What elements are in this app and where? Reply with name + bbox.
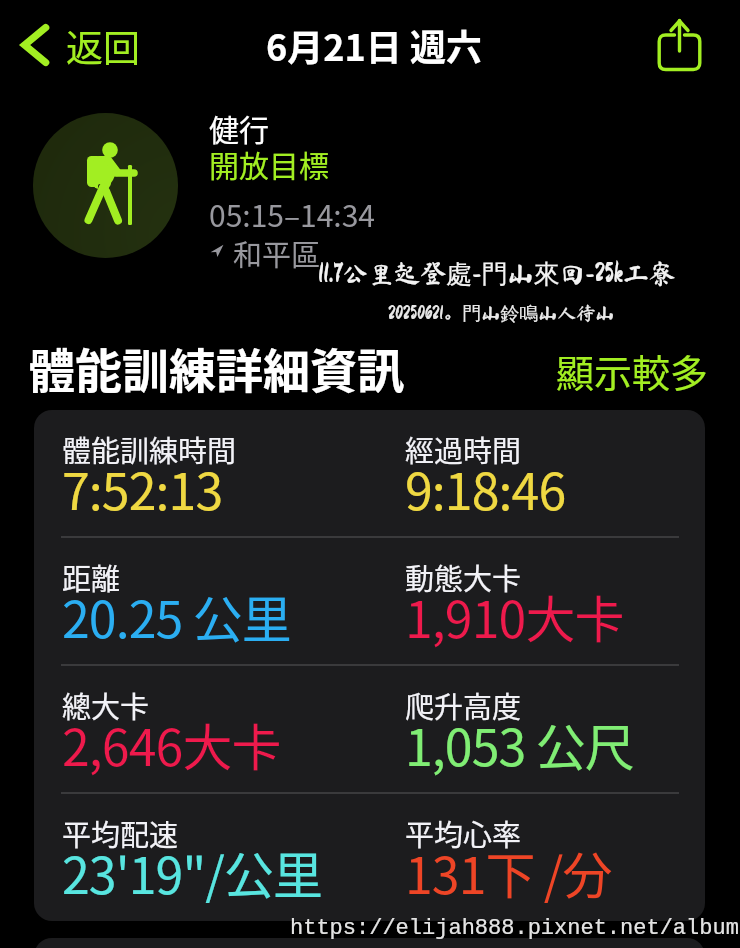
- staticText: 返回: [66, 19, 140, 73]
- staticText: 9:18:46: [405, 452, 566, 524]
- staticText: 2,646大卡: [62, 708, 281, 780]
- staticText: 6月21日 週六: [266, 19, 482, 71]
- staticText: 體能訓練時間: [62, 428, 237, 470]
- staticText: 爬升高度: [405, 684, 522, 726]
- staticText: 20.25 公里: [62, 580, 291, 652]
- staticText: 動態大卡: [405, 556, 522, 598]
- button[interactable]: 顯示較多: [556, 343, 709, 398]
- staticText: 05:15–14:34: [209, 192, 375, 235]
- staticText: 體能訓練詳細資訊: [28, 333, 404, 401]
- staticText: 平均心率: [405, 812, 522, 854]
- staticText: 1,053 公尺: [405, 708, 634, 780]
- staticText: 開放目標: [209, 142, 329, 185]
- button[interactable]: 返回: [18, 14, 133, 68]
- staticText: 健行: [209, 106, 269, 149]
- staticText: 1,910大卡: [405, 580, 624, 652]
- staticText: 23'19"/公里: [62, 836, 323, 908]
- staticText: 131下 /分: [405, 836, 612, 908]
- staticText: 7:52:13: [62, 452, 223, 524]
- button[interactable]: Share: [657, 18, 702, 73]
- staticText: 距離: [62, 556, 121, 598]
- staticText: 11.7公里起登處-門山來回-25k工寮: [318, 258, 676, 291]
- staticText: 平均配速: [62, 812, 179, 854]
- staticText: https://elijah888.pixnet.net/album: [290, 916, 739, 941]
- staticText: 和平區: [233, 232, 321, 274]
- staticText: 經過時間: [405, 428, 522, 470]
- staticText: 20250621。門山鈴鳴山人待山: [388, 302, 615, 326]
- staticText: 總大卡: [62, 684, 150, 726]
